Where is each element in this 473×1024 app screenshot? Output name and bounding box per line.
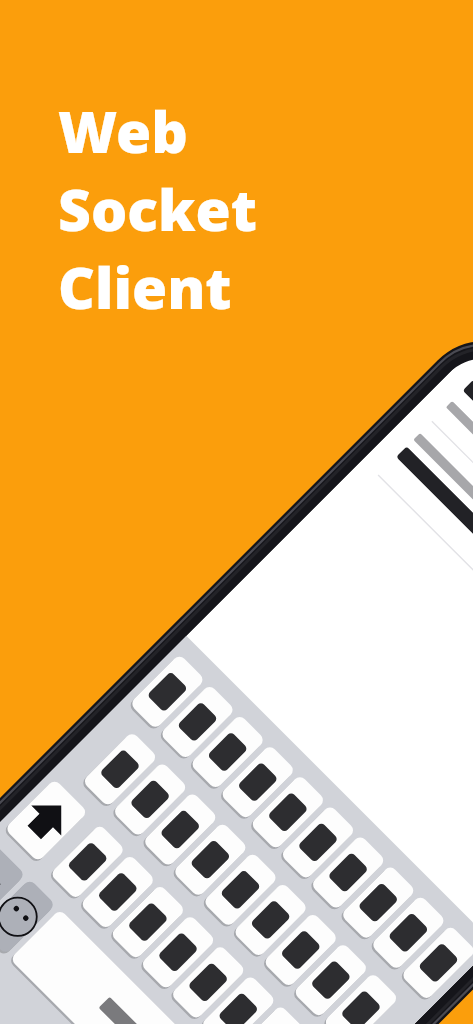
staticText: Client xyxy=(58,248,232,326)
staticText: Socket xyxy=(58,170,257,248)
staticText: Web xyxy=(58,92,188,170)
button[interactable]: WebSocket Client app preview on phone xyxy=(0,0,473,1024)
